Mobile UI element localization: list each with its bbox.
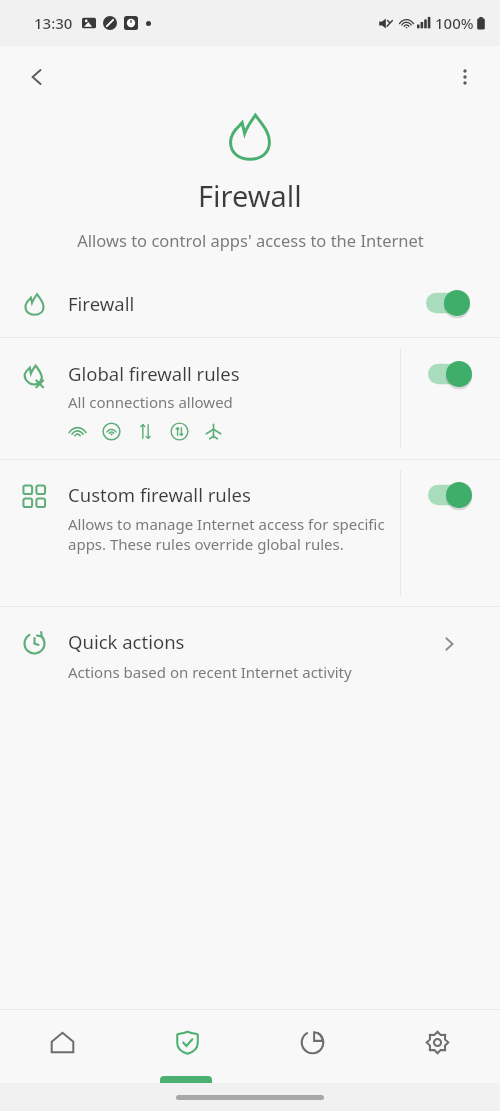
button[interactable]: Protection (125, 1010, 250, 1083)
button[interactable]: Global firewall rules (0, 339, 500, 459)
button[interactable]: Home (0, 1010, 125, 1083)
button[interactable]: Custom firewall rules (0, 460, 500, 606)
button[interactable]: More options (442, 54, 488, 100)
staticText: Global firewall rules (68, 361, 240, 386)
staticText: Allows to manage Internet access for spe… (68, 514, 394, 554)
staticText: Firewall (198, 176, 302, 215)
staticText: All connections allowed (68, 392, 233, 412)
button[interactable]: Firewall (0, 269, 500, 337)
staticText: Firewall (68, 291, 135, 316)
button[interactable]: Toggle (428, 482, 472, 508)
button[interactable]: Quick actions (0, 607, 500, 699)
staticText: Actions based on recent Internet activit… (68, 662, 352, 682)
staticText: Custom firewall rules (68, 482, 251, 507)
button[interactable]: Toggle (426, 290, 470, 316)
button[interactable]: Settings (375, 1010, 500, 1083)
staticText: Allows to control apps' access to the In… (77, 229, 424, 251)
staticText: 100% (435, 13, 474, 33)
button[interactable]: Back (14, 54, 60, 100)
button[interactable]: Toggle (428, 361, 472, 387)
button[interactable]: Statistics (250, 1010, 375, 1083)
staticText: 13:30 (34, 13, 73, 33)
staticText: Quick actions (68, 629, 185, 654)
